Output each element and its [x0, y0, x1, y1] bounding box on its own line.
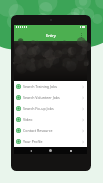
staticText: Search Training Jobs	[23, 84, 81, 89]
staticText: Video	[23, 117, 81, 122]
staticText: Contact Resource	[23, 128, 81, 133]
staticText: Entry	[46, 33, 56, 38]
button[interactable]: Search Fix-up Jobs	[14, 103, 87, 114]
button[interactable]: Home	[47, 147, 54, 154]
button[interactable]: Recents	[67, 147, 74, 154]
button[interactable]: Video	[14, 114, 87, 125]
button[interactable]: Search Volunteer Jobs	[14, 92, 87, 103]
staticText: Search Volunteer Jobs	[23, 95, 81, 100]
button[interactable]: Your Profile	[14, 136, 87, 147]
staticText: Search Fix-up Jobs	[23, 106, 81, 111]
button[interactable]: Back	[27, 147, 34, 154]
button[interactable]: Contact Resource	[14, 125, 87, 136]
button[interactable]: More options	[78, 32, 85, 39]
staticText: Your Profile	[23, 139, 81, 144]
button[interactable]: Search Training Jobs	[14, 81, 87, 92]
